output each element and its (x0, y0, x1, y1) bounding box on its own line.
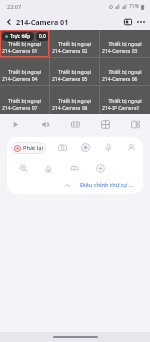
button[interactable]: Điều chỉnh thứ tự ... (78, 180, 136, 190)
button[interactable]: Collapse (62, 180, 73, 191)
button[interactable]: Record (74, 137, 97, 158)
button[interactable]: Capture photo (50, 137, 74, 158)
button[interactable]: Thiết bị ngoại tuyến. (50, 30, 99, 57)
button[interactable]: Phát lại (11, 142, 46, 154)
staticText: Thiết bị ngoại tuyến. (1, 40, 48, 47)
staticText: Phát lại (23, 144, 43, 152)
staticText: 214-Camera 01 (2, 48, 38, 55)
button[interactable]: Quality HD (60, 114, 90, 134)
button[interactable]: Thiết bị ngoại tuyến. (0, 86, 49, 114)
staticText: Thiết bị ngoại tuyến. (101, 97, 149, 104)
staticText: 71% (129, 3, 139, 10)
button[interactable]: Thiết bị ngoại tuyến. (0, 58, 49, 85)
staticText: 214-Camera 01 (16, 17, 69, 27)
button[interactable]: Thiết bị ngoại tuyến. (50, 58, 99, 85)
button[interactable]: Microphone (97, 137, 120, 158)
staticText: 0.00 k/s (39, 33, 46, 40)
staticText: Thiết bị ngoại tuyến. (51, 97, 98, 104)
button[interactable]: Sound (30, 114, 60, 134)
button[interactable]: Thiết bị ngoại tuyến. (50, 86, 99, 114)
staticText: Thiết bị ngoại tuyến. (101, 40, 149, 47)
staticText: 214-Camera 05 (52, 76, 88, 83)
staticText: 214-IP Camera1 (102, 105, 140, 112)
button[interactable]: Grid layout (90, 114, 120, 134)
staticText: 22:07 (7, 3, 22, 10)
staticText: 214-Camera 08 (52, 105, 88, 112)
staticText: Điều chỉnh thứ tự ... (80, 181, 134, 189)
button[interactable]: PTZ control (120, 137, 143, 158)
button[interactable]: Fisheye (61, 158, 87, 178)
button[interactable]: Thiết bị ngoại tuyến. (100, 58, 150, 85)
staticText: Thiết bị ngoại tuyến. (1, 97, 48, 104)
button[interactable]: Add (87, 158, 113, 178)
button[interactable]: Thiết bị ngoại tuyến. (100, 86, 150, 114)
button[interactable]: Zoom (11, 158, 36, 178)
button[interactable]: More options (134, 15, 147, 28)
button[interactable]: Alarm (36, 158, 61, 178)
staticText: 214-Camera 04 (2, 76, 38, 83)
button[interactable]: Back (3, 16, 15, 28)
button[interactable]: Play (0, 114, 30, 134)
staticText: Thiết bị ngoại tuyến. (101, 68, 149, 75)
staticText: Trực tiếp (10, 33, 31, 40)
staticText: Thiết bị ngoại tuyến. (1, 68, 48, 75)
staticText: Thiết bị ngoại tuyến. (51, 40, 98, 47)
staticText: 214-Camera 02 (52, 48, 88, 55)
staticText: Thiết bị ngoại tuyến. (51, 68, 98, 75)
button[interactable]: Split screen (120, 114, 150, 134)
button[interactable]: Cast (121, 15, 134, 28)
staticText: 214-Camera 06 (102, 76, 138, 83)
button[interactable]: Thiết bị ngoại tuyến. (100, 30, 150, 57)
staticText: 214-Camera 03 (102, 48, 138, 55)
staticText: 214-Camera 07 (2, 105, 38, 112)
button[interactable]: Trực tiếp (0, 30, 49, 57)
